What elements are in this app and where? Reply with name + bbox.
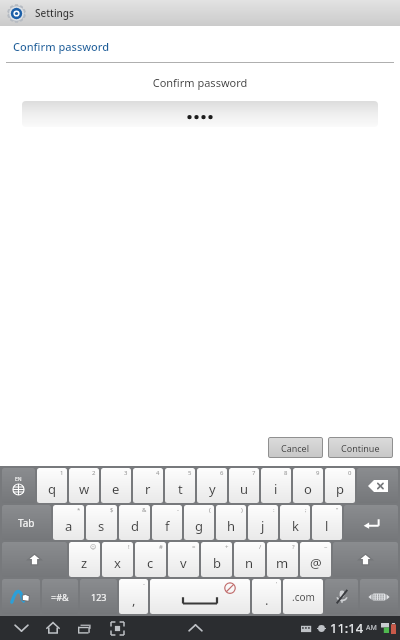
button[interactable]: 6	[197, 468, 227, 503]
button[interactable]: )	[216, 505, 246, 540]
button[interactable]: 1	[37, 468, 67, 503]
staticText: m	[276, 554, 289, 572]
button[interactable]: !	[102, 542, 133, 577]
button[interactable]: *	[53, 505, 84, 540]
staticText: g	[195, 517, 203, 535]
button[interactable]: /	[234, 542, 265, 577]
staticText: 1	[60, 469, 64, 477]
staticText: u	[240, 480, 249, 498]
staticText: w	[79, 480, 90, 498]
staticText: !	[128, 543, 130, 551]
staticText: $	[110, 506, 114, 514]
button[interactable]: Recent apps	[74, 617, 96, 639]
staticText: x	[114, 554, 121, 572]
staticText: o	[304, 480, 312, 498]
staticText: #	[159, 543, 163, 551]
staticText: f	[165, 517, 170, 535]
staticText: :	[273, 506, 275, 514]
button[interactable]: Hide keyboard	[360, 579, 398, 614]
button[interactable]: 2	[69, 468, 99, 503]
button[interactable]: Home	[42, 617, 64, 639]
button[interactable]: ?	[267, 542, 298, 577]
button[interactable]: ;	[280, 505, 310, 540]
button[interactable]: :	[248, 505, 278, 540]
button[interactable]: 9	[293, 468, 323, 503]
staticText: ☺	[90, 543, 97, 550]
staticText: ;	[305, 506, 307, 514]
button[interactable]: Back	[10, 617, 32, 639]
staticText: .	[265, 591, 269, 609]
button[interactable]: &	[119, 505, 150, 540]
button[interactable]: 123	[80, 579, 117, 614]
button[interactable]: +	[201, 542, 232, 577]
staticText: "	[336, 506, 339, 514]
staticText: z	[81, 554, 88, 572]
button[interactable]: '	[252, 579, 281, 614]
staticText: c	[147, 554, 154, 572]
button[interactable]: Enter	[344, 505, 398, 540]
button[interactable]: Shift	[2, 542, 67, 577]
staticText: .com	[292, 590, 315, 604]
button[interactable]: Change input language	[2, 468, 35, 503]
button[interactable]: ~	[300, 542, 331, 577]
button[interactable]: =	[168, 542, 199, 577]
staticText: ,	[132, 591, 136, 609]
button[interactable]: =#&	[42, 579, 78, 614]
button[interactable]: $	[86, 505, 117, 540]
staticText: 0	[348, 469, 352, 477]
button[interactable]: .com	[283, 579, 323, 614]
staticText: )	[241, 506, 243, 514]
button[interactable]: Handwriting	[2, 579, 40, 614]
button[interactable]: Screenshot	[106, 617, 128, 639]
staticText: /	[259, 543, 262, 551]
button[interactable]	[22, 101, 378, 127]
button[interactable]: 3	[101, 468, 131, 503]
button[interactable]: 7	[229, 468, 259, 503]
button[interactable]: -	[119, 579, 148, 614]
staticText: 3	[124, 469, 128, 477]
staticText: Continue	[341, 442, 380, 454]
staticText: Settings	[35, 6, 74, 20]
button[interactable]: -	[152, 505, 182, 540]
button[interactable]: Cancel	[268, 437, 323, 458]
button[interactable]: Tab	[2, 505, 51, 540]
staticText: 4	[156, 469, 160, 477]
button[interactable]: (	[184, 505, 214, 540]
staticText: 5	[188, 469, 192, 477]
button[interactable]: ☺	[69, 542, 100, 577]
staticText: n	[245, 554, 254, 572]
button[interactable]: 4	[133, 468, 163, 503]
button[interactable]: Shift	[333, 542, 398, 577]
staticText: d	[131, 517, 139, 535]
staticText: k	[292, 517, 299, 535]
staticText: Confirm password	[0, 75, 400, 90]
button[interactable]: 5	[165, 468, 195, 503]
staticText: @	[310, 554, 322, 572]
staticText: v	[180, 554, 187, 572]
staticText: s	[98, 517, 105, 535]
staticText: q	[48, 480, 56, 498]
staticText: +	[225, 543, 229, 551]
button[interactable]: 8	[261, 468, 291, 503]
staticText: EN	[15, 476, 22, 483]
staticText: Confirm password	[13, 39, 110, 54]
button[interactable]	[150, 579, 250, 614]
button[interactable]: Show notifications	[183, 617, 207, 639]
staticText: ~	[324, 543, 328, 551]
staticText: Tab	[18, 516, 35, 530]
staticText: AM	[366, 623, 377, 633]
staticText: i	[274, 480, 278, 498]
button[interactable]: Backspace	[357, 468, 398, 503]
staticText: '	[276, 580, 278, 588]
button[interactable]: Voice input disabled	[325, 579, 358, 614]
staticText: =#&	[51, 591, 69, 603]
button[interactable]: Continue	[328, 437, 393, 458]
staticText: (	[209, 506, 211, 514]
staticText: -	[143, 580, 145, 588]
staticText: h	[227, 517, 236, 535]
button[interactable]: #	[135, 542, 166, 577]
staticText: t	[178, 480, 183, 498]
button[interactable]: 0	[325, 468, 355, 503]
staticText: &	[142, 506, 147, 514]
button[interactable]: "	[312, 505, 342, 540]
